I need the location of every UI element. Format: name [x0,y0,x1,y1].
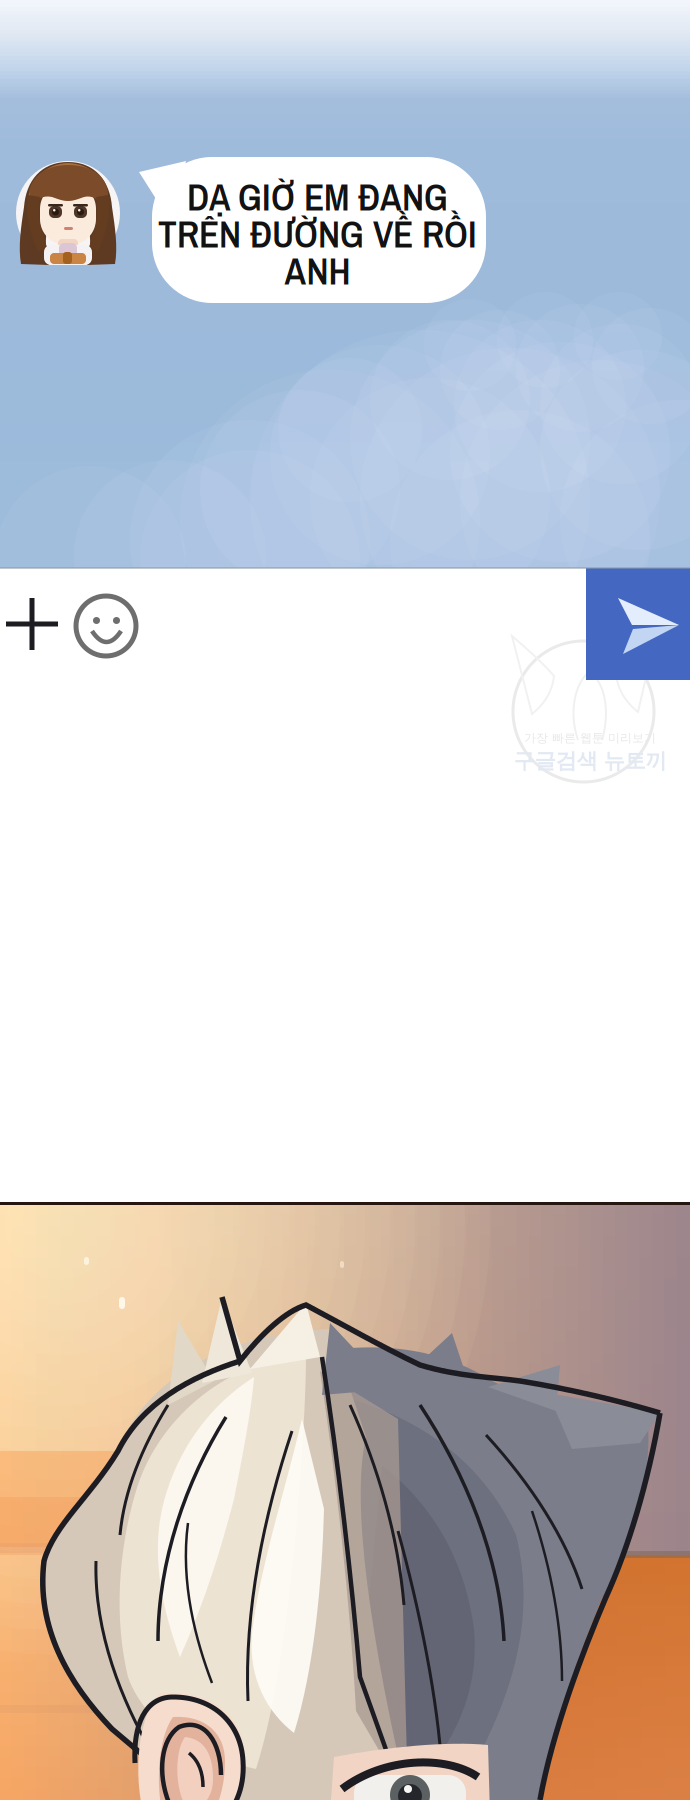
button[interactable]: Add attachment [0,590,68,658]
staticText: 구글검색 뉴토끼 [513,748,666,774]
staticText: ANH [284,246,350,296]
staticText: 가장 빠른 웹툰 미리보기 [524,731,656,745]
staticText: DẠ GIỜ EM ĐANG [187,172,448,222]
staticText: TRÊN ĐƯỜNG VỀ RỒI [158,209,477,259]
button[interactable]: Emoji [72,591,140,659]
button[interactable]: Send message [586,568,690,680]
